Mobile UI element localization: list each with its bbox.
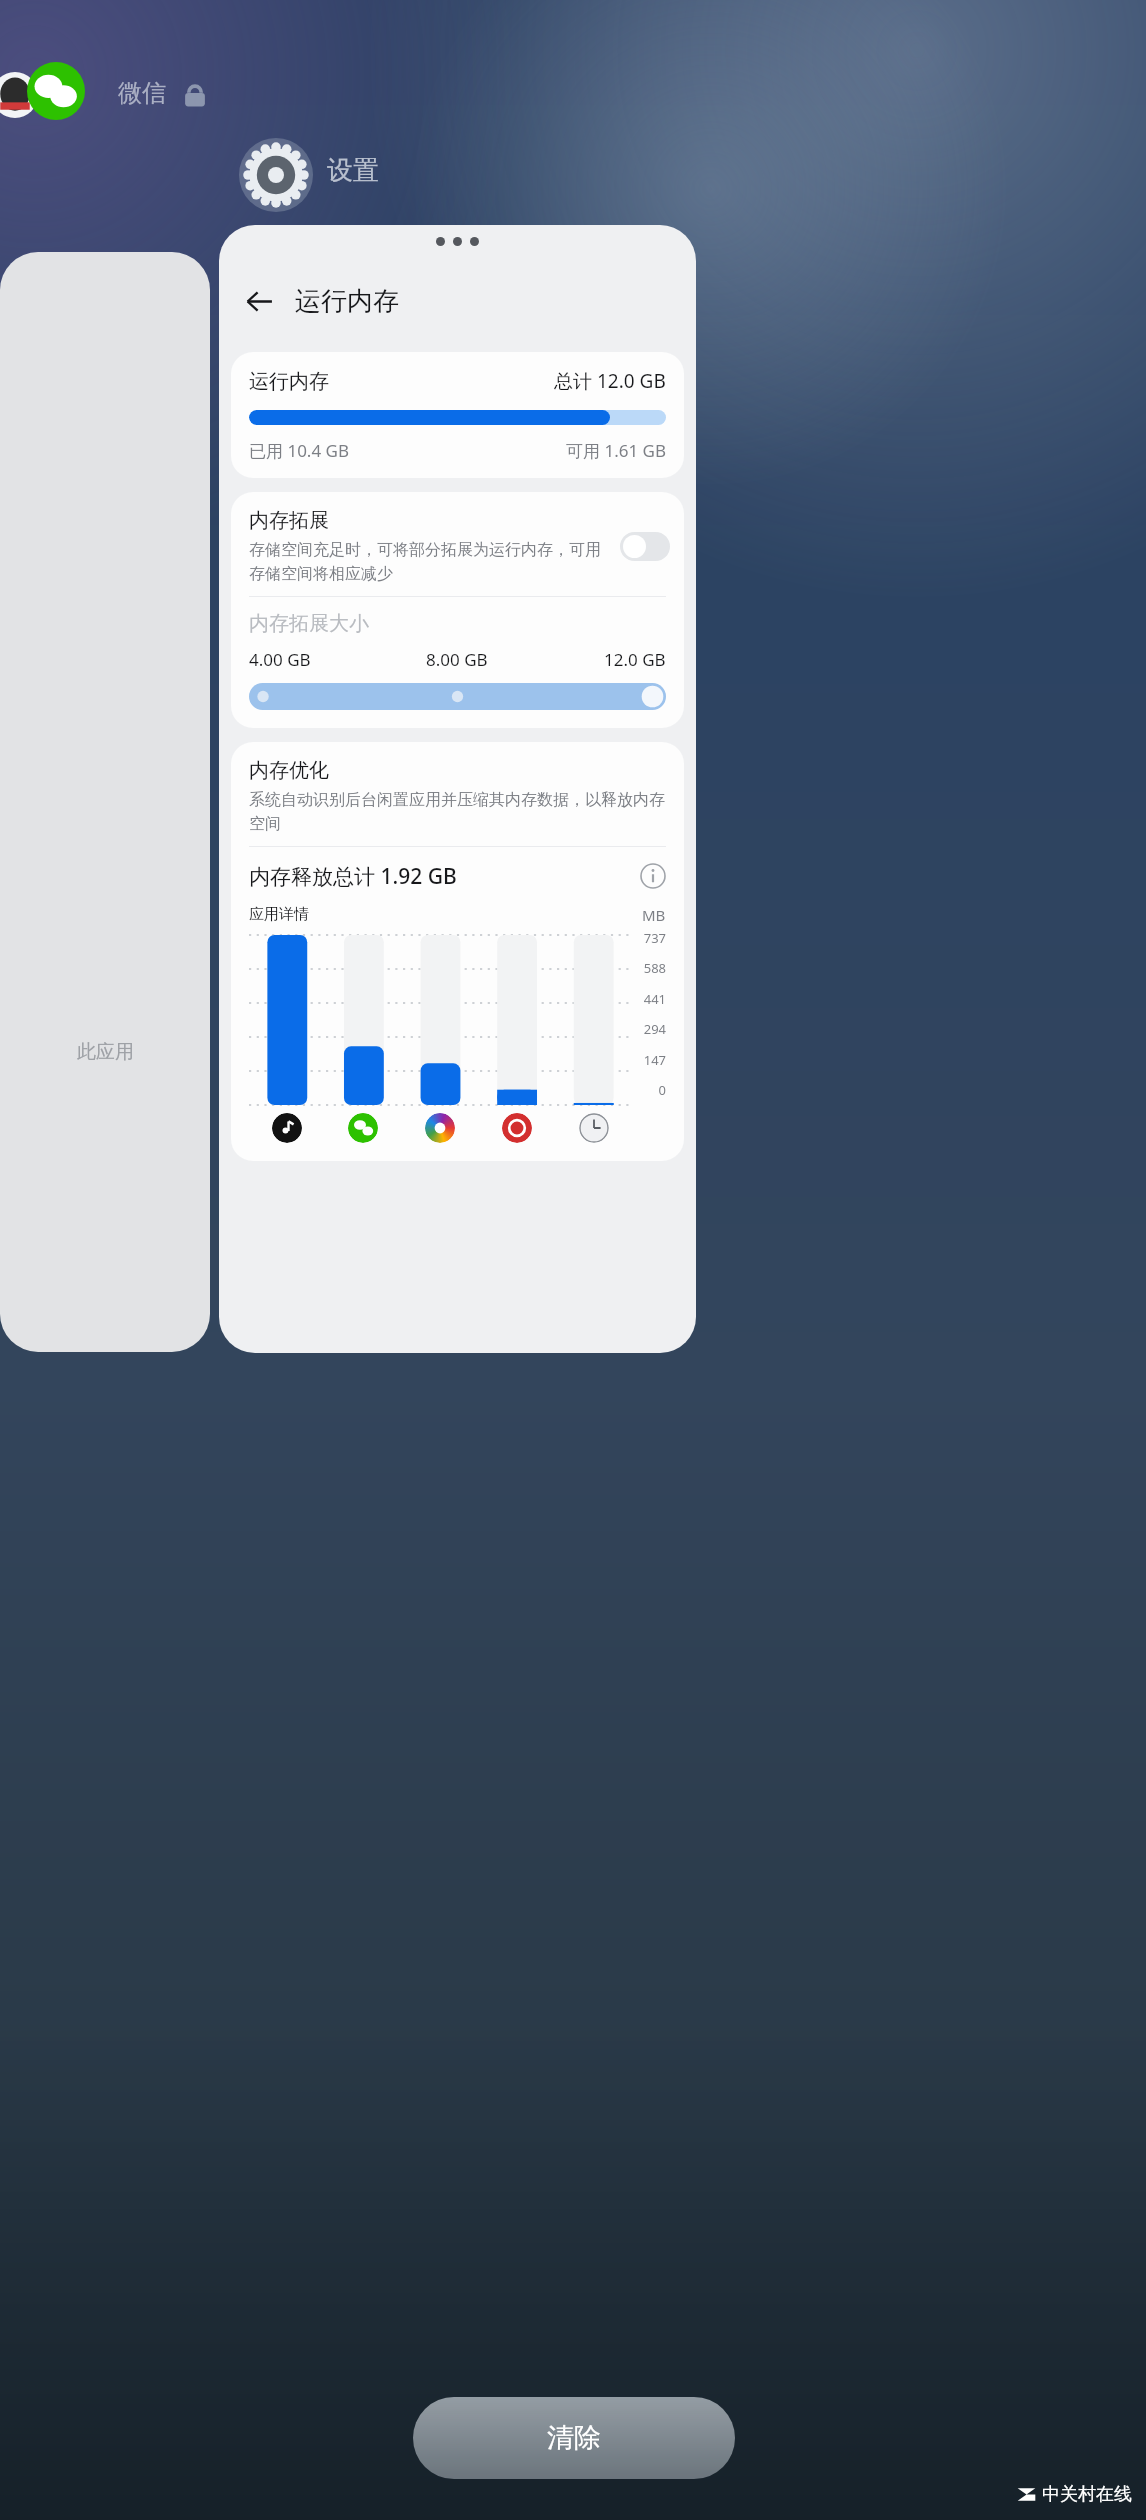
button[interactable]: 返回 xyxy=(219,225,696,1353)
button[interactable]: 时钟 xyxy=(579,1113,609,1143)
staticText: 运行内存 xyxy=(295,285,399,318)
button[interactable]: 说明 xyxy=(638,861,668,891)
staticText: 内存拓展 xyxy=(249,508,329,533)
button[interactable]: 设置 xyxy=(239,138,313,212)
staticText: 存储空间充足时，可将部分拓展为运行内存，可用存储空间将相应减少 xyxy=(249,540,608,584)
staticText: 内存优化 xyxy=(249,758,329,783)
staticText: 设置 xyxy=(327,154,379,187)
staticText: 系统自动识别后台闲置应用并压缩其内存数据，以释放内存空间 xyxy=(249,790,666,834)
staticText: 总计 12.0 GB xyxy=(554,368,666,394)
staticText: MB xyxy=(642,905,666,925)
staticText: 12.0 GB xyxy=(604,648,666,671)
button[interactable]: 此应用 xyxy=(0,252,210,1352)
staticText: 可用 1.61 GB xyxy=(566,439,666,462)
button[interactable]: 返回 xyxy=(219,272,696,330)
button[interactable]: 内存拓展 xyxy=(231,492,684,728)
staticText: 294 xyxy=(643,1020,666,1038)
staticText: 147 xyxy=(643,1051,666,1069)
button[interactable]: 返回 xyxy=(239,281,279,321)
button[interactable]: 运行内存 xyxy=(231,352,684,478)
button[interactable]: 抖音 xyxy=(272,1113,302,1143)
staticText: 此应用 xyxy=(77,1040,134,1064)
button[interactable]: QQ xyxy=(0,72,38,118)
staticText: 4.00 GB xyxy=(249,648,311,671)
button[interactable]: 微信 xyxy=(27,62,85,120)
button[interactable]: 微信 xyxy=(348,1113,378,1143)
button[interactable]: 相册 xyxy=(425,1113,455,1143)
staticText: 运行内存 xyxy=(249,369,329,394)
staticText: 中关村在线 xyxy=(1042,2483,1132,2506)
button[interactable]: 内存拓展开关 xyxy=(620,532,670,561)
staticText: 737 xyxy=(643,929,666,947)
staticText: 清除 xyxy=(547,2421,601,2455)
staticText: 441 xyxy=(643,990,666,1008)
button[interactable]: 清除 xyxy=(413,2397,735,2479)
staticText: 内存释放总计 1.92 GB xyxy=(249,862,457,891)
staticText: 微信 xyxy=(118,78,166,108)
staticText: 8.00 GB xyxy=(426,648,488,671)
staticText: 已用 10.4 GB xyxy=(249,439,349,462)
staticText: 588 xyxy=(643,959,666,977)
button[interactable]: 内存优化 xyxy=(231,742,684,1161)
button[interactable]: 搜狐 xyxy=(502,1113,532,1143)
staticText: 内存拓展大小 xyxy=(249,611,369,636)
staticText: 应用详情 xyxy=(249,905,309,924)
button[interactable]: 内存拓展大小滑块 xyxy=(249,683,666,710)
staticText: 0 xyxy=(658,1081,666,1099)
